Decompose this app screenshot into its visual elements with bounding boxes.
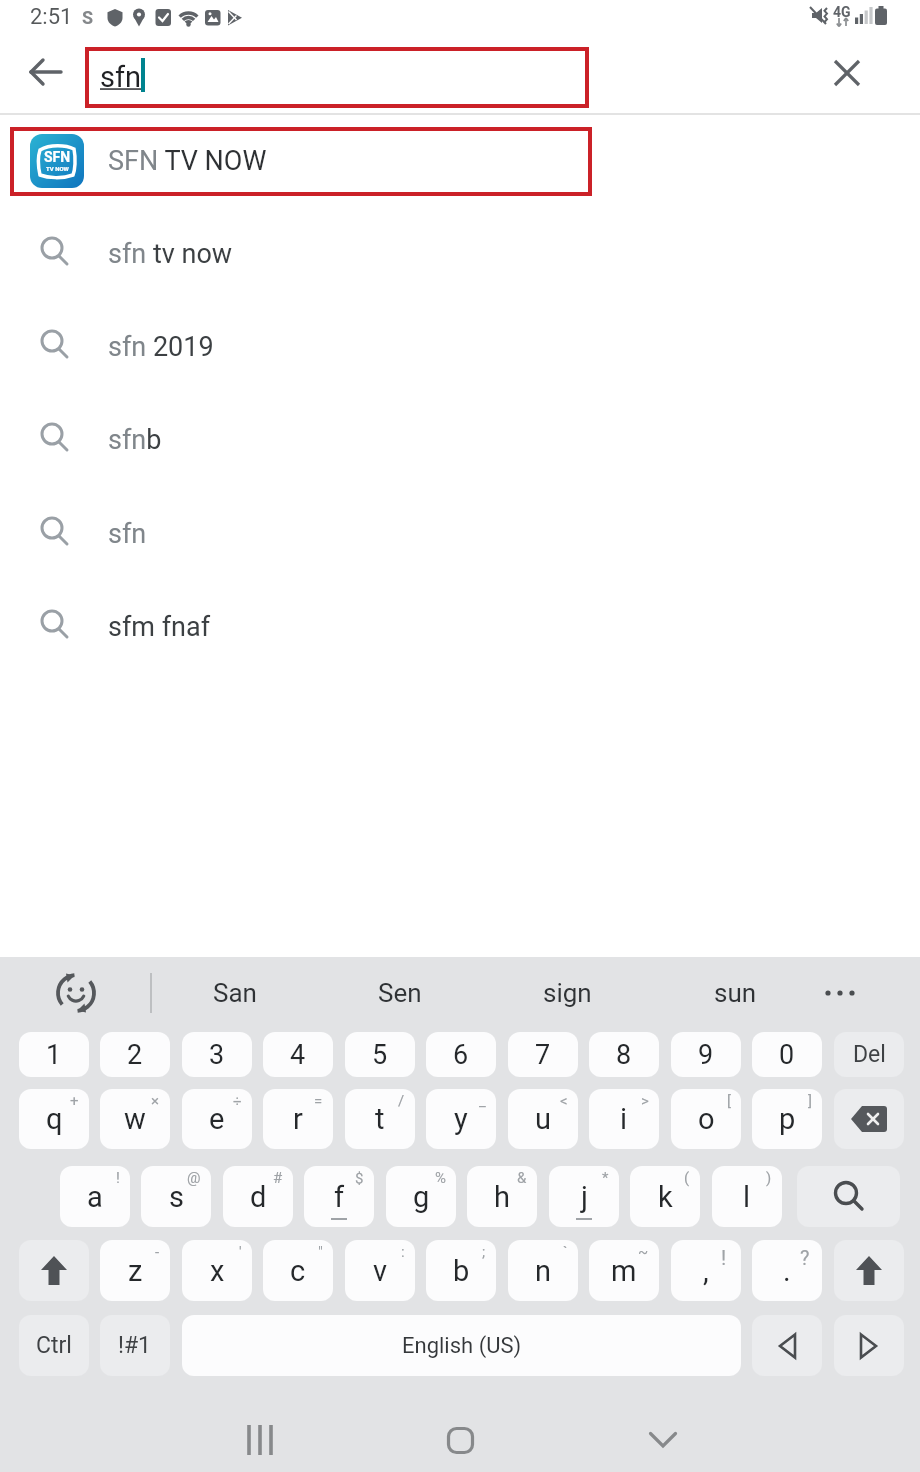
staticText: 8 bbox=[616, 1039, 632, 1071]
button[interactable]: 2 bbox=[100, 1032, 170, 1077]
staticText: sfn tv now bbox=[108, 238, 233, 270]
staticText: 5 bbox=[372, 1039, 388, 1071]
button[interactable]: x bbox=[182, 1240, 252, 1301]
button[interactable]: 5 bbox=[345, 1032, 415, 1077]
button[interactable] bbox=[430, 1410, 490, 1470]
button[interactable]: k bbox=[630, 1166, 700, 1227]
staticText: ? bbox=[800, 1246, 810, 1269]
button[interactable]: SFN bbox=[10, 127, 592, 196]
button[interactable]: c bbox=[263, 1240, 333, 1301]
button[interactable]: 8 bbox=[589, 1032, 659, 1077]
staticText: SFN TV NOW bbox=[108, 145, 267, 177]
button[interactable] bbox=[834, 1089, 904, 1149]
staticText: ` bbox=[563, 1243, 568, 1261]
staticText: s bbox=[169, 1180, 184, 1214]
staticText: 2 bbox=[127, 1039, 143, 1071]
button[interactable]: sign bbox=[507, 969, 627, 1017]
button[interactable]: San bbox=[175, 969, 295, 1017]
button[interactable]: sfn tv now bbox=[0, 207, 920, 300]
staticText: * bbox=[602, 1169, 609, 1187]
button[interactable]: v bbox=[345, 1240, 415, 1301]
button[interactable] bbox=[752, 1315, 822, 1376]
staticText: _ bbox=[479, 1092, 486, 1110]
button[interactable]: sfn bbox=[100, 60, 142, 94]
staticText: z bbox=[128, 1254, 143, 1288]
button[interactable]: English (US) bbox=[182, 1315, 741, 1376]
button[interactable]: , bbox=[671, 1240, 741, 1301]
button[interactable]: d bbox=[223, 1166, 293, 1227]
button[interactable]: b bbox=[426, 1240, 496, 1301]
button[interactable] bbox=[834, 1315, 904, 1376]
button[interactable]: m bbox=[589, 1240, 659, 1301]
button[interactable] bbox=[834, 1240, 904, 1301]
button[interactable] bbox=[797, 1166, 900, 1227]
button[interactable]: s bbox=[141, 1166, 211, 1227]
button[interactable]: sfnb bbox=[0, 393, 920, 486]
button[interactable]: sfn 2019 bbox=[0, 300, 920, 393]
button[interactable]: y bbox=[426, 1089, 496, 1149]
button[interactable] bbox=[24, 50, 68, 94]
button[interactable]: 7 bbox=[508, 1032, 578, 1077]
button[interactable]: sfm fnaf bbox=[0, 580, 920, 673]
button[interactable] bbox=[825, 51, 869, 95]
staticText: ÷ bbox=[233, 1092, 242, 1110]
staticText: > bbox=[641, 1092, 649, 1110]
button[interactable]: !#1 bbox=[100, 1315, 170, 1376]
button[interactable]: 9 bbox=[671, 1032, 741, 1077]
staticText: !#1 bbox=[118, 1332, 152, 1359]
button[interactable]: a bbox=[60, 1166, 130, 1227]
staticText: S bbox=[82, 7, 94, 28]
button[interactable]: g bbox=[386, 1166, 456, 1227]
button[interactable] bbox=[800, 969, 880, 1017]
staticText: f bbox=[334, 1180, 345, 1214]
staticText: ~ bbox=[638, 1243, 649, 1261]
button[interactable]: sfn bbox=[0, 487, 920, 580]
button[interactable]: t bbox=[345, 1089, 415, 1149]
button[interactable]: o bbox=[671, 1089, 741, 1149]
staticText: sun bbox=[714, 978, 757, 1008]
button[interactable]: i bbox=[589, 1089, 659, 1149]
button[interactable] bbox=[230, 1410, 290, 1470]
button[interactable]: w bbox=[100, 1089, 170, 1149]
button[interactable]: l bbox=[712, 1166, 782, 1227]
button[interactable] bbox=[633, 1410, 693, 1470]
staticText: w bbox=[124, 1102, 146, 1136]
button[interactable] bbox=[56, 973, 96, 1013]
button[interactable]: Sen bbox=[340, 969, 460, 1017]
staticText: sfn bbox=[108, 518, 147, 550]
button[interactable] bbox=[19, 1240, 89, 1301]
staticText: g bbox=[413, 1180, 430, 1214]
staticText: ! bbox=[721, 1246, 727, 1269]
staticText: sfn 2019 bbox=[108, 331, 214, 363]
button[interactable]: 4 bbox=[263, 1032, 333, 1077]
staticText: : bbox=[401, 1243, 405, 1261]
staticText: SFN bbox=[44, 149, 71, 165]
button[interactable]: 0 bbox=[752, 1032, 822, 1077]
button[interactable]: p bbox=[752, 1089, 822, 1149]
staticText: 1 bbox=[46, 1039, 62, 1071]
button[interactable]: sun bbox=[675, 969, 795, 1017]
staticText: × bbox=[151, 1092, 160, 1110]
button[interactable]: 6 bbox=[426, 1032, 496, 1077]
button[interactable]: f bbox=[304, 1166, 374, 1227]
button[interactable]: n bbox=[508, 1240, 578, 1301]
button[interactable]: q bbox=[19, 1089, 89, 1149]
staticText: u bbox=[535, 1102, 551, 1136]
button[interactable]: u bbox=[508, 1089, 578, 1149]
button[interactable]: . bbox=[752, 1240, 822, 1301]
button[interactable]: Ctrl bbox=[19, 1315, 89, 1376]
staticText: k bbox=[658, 1180, 673, 1214]
staticText: 4G bbox=[833, 4, 851, 20]
button[interactable]: e bbox=[182, 1089, 252, 1149]
button[interactable]: Del bbox=[834, 1032, 904, 1077]
button[interactable]: 1 bbox=[19, 1032, 89, 1077]
staticText: t bbox=[375, 1102, 385, 1136]
button[interactable]: 3 bbox=[182, 1032, 252, 1077]
button[interactable]: j bbox=[549, 1166, 619, 1227]
staticText: ' bbox=[239, 1243, 242, 1261]
staticText: @ bbox=[187, 1169, 201, 1187]
staticText: - bbox=[155, 1243, 160, 1261]
button[interactable]: r bbox=[263, 1089, 333, 1149]
button[interactable]: z bbox=[100, 1240, 170, 1301]
button[interactable]: h bbox=[467, 1166, 537, 1227]
